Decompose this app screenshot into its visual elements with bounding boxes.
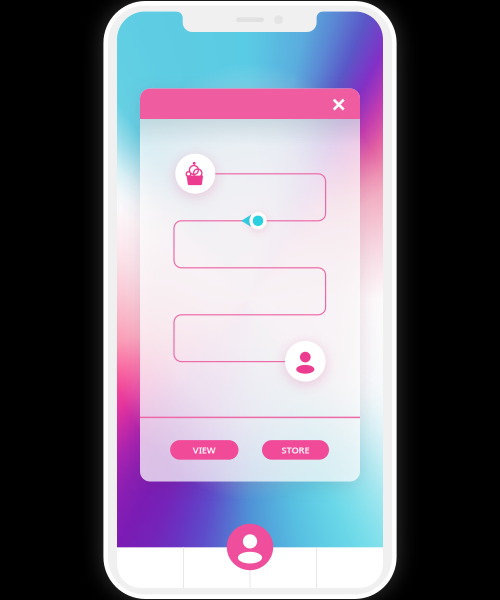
button[interactable]: STORE bbox=[262, 440, 329, 460]
button[interactable]: Close bbox=[326, 92, 352, 118]
staticText: VIEW bbox=[193, 444, 216, 456]
staticText: STORE bbox=[281, 444, 309, 456]
button[interactable]: Profile bbox=[227, 524, 273, 570]
button[interactable]: VIEW bbox=[170, 440, 238, 460]
